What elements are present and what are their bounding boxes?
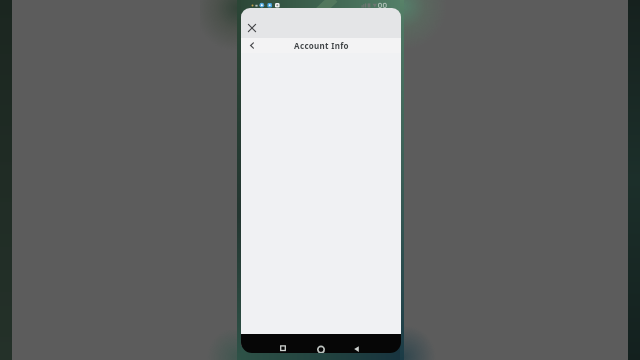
button[interactable] <box>277 341 289 353</box>
button[interactable] <box>245 38 259 53</box>
button[interactable] <box>244 20 260 36</box>
button[interactable] <box>350 341 362 353</box>
staticText: Account Info <box>294 40 349 51</box>
button[interactable] <box>315 341 327 353</box>
